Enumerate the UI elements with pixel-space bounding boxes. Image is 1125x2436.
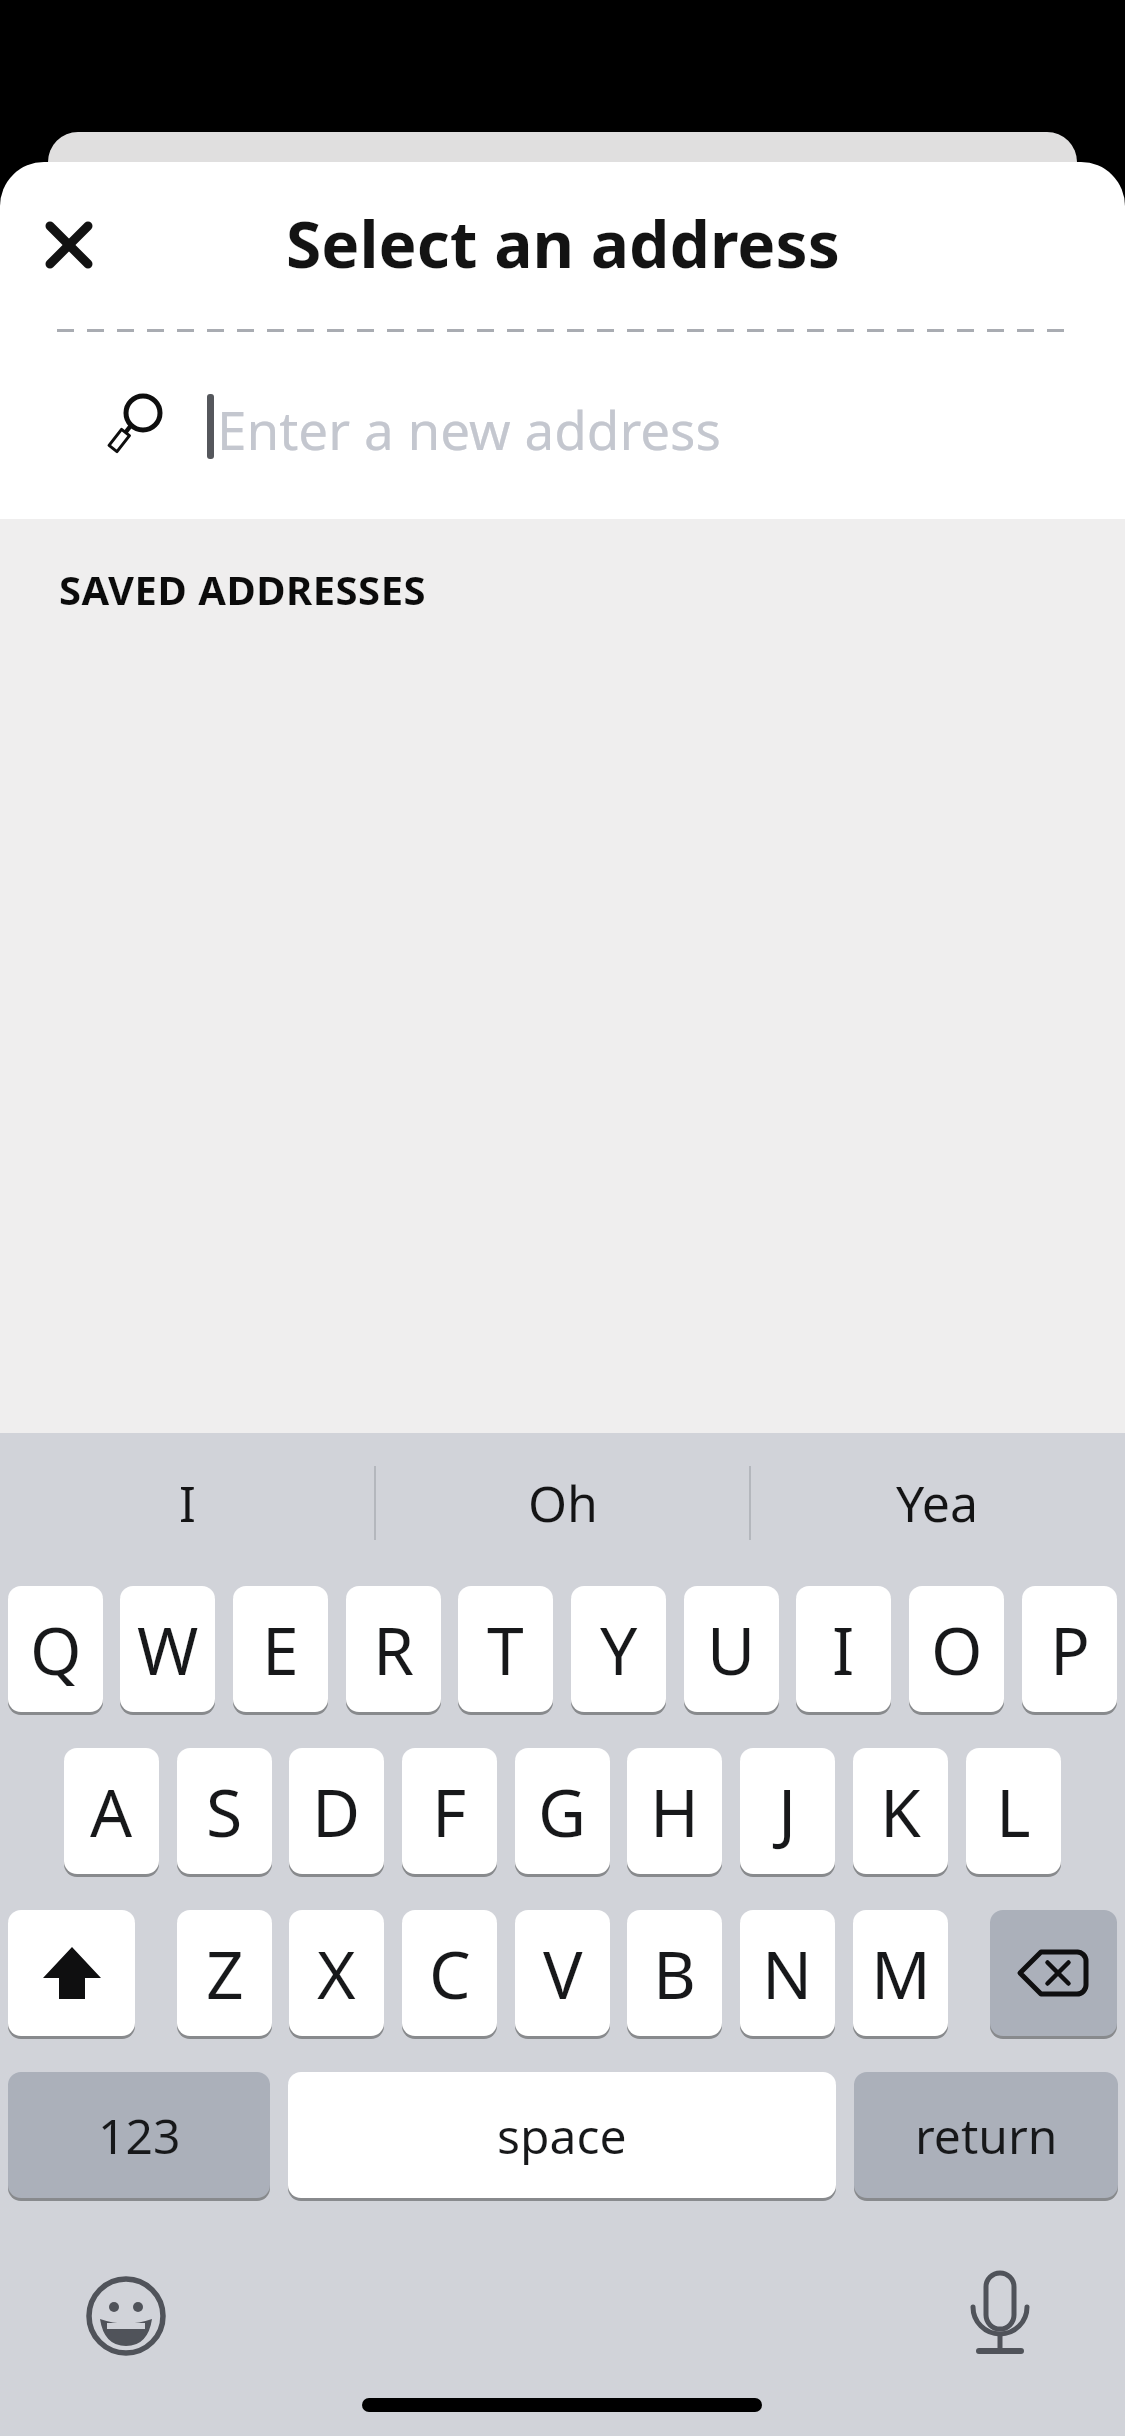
button[interactable] [990, 1910, 1117, 2036]
button[interactable]: O [909, 1586, 1004, 1712]
staticText: 123 [98, 2103, 181, 2168]
button[interactable]: S [177, 1748, 272, 1874]
staticText: Enter a new address [217, 393, 721, 465]
button[interactable]: space [288, 2072, 836, 2198]
button[interactable]: V [515, 1910, 610, 2036]
staticText: E [262, 1604, 299, 1694]
button[interactable]: M [853, 1910, 948, 2036]
staticText: X [317, 1928, 356, 2018]
button[interactable]: I [796, 1586, 891, 1712]
button[interactable]: X [289, 1910, 384, 2036]
button[interactable]: Y [571, 1586, 666, 1712]
staticText: W [137, 1604, 199, 1694]
button[interactable] [950, 2262, 1050, 2372]
button[interactable]: U [684, 1586, 779, 1712]
staticText: D [312, 1766, 361, 1856]
staticText: SAVED ADDRESSES [59, 562, 427, 616]
staticText: space [497, 2103, 627, 2168]
button[interactable]: Q [8, 1586, 103, 1712]
button[interactable]: N [740, 1910, 835, 2036]
button[interactable]: T [458, 1586, 553, 1712]
staticText: L [996, 1766, 1031, 1856]
button[interactable]: K [853, 1748, 948, 1874]
button[interactable]: H [627, 1748, 722, 1874]
staticText: Z [206, 1928, 244, 2018]
button[interactable] [76, 2266, 176, 2366]
button[interactable]: G [515, 1748, 610, 1874]
staticText: K [880, 1766, 921, 1856]
staticText: O [931, 1604, 983, 1694]
staticText: U [707, 1604, 756, 1694]
staticText: I [179, 1469, 196, 1537]
button[interactable]: F [402, 1748, 497, 1874]
button[interactable]: Yea [750, 1463, 1125, 1543]
staticText: G [538, 1766, 587, 1856]
staticText: Q [30, 1604, 82, 1694]
staticText: M [871, 1928, 931, 2018]
staticText: Yea [896, 1469, 979, 1537]
staticText: Y [600, 1604, 638, 1694]
button[interactable]: W [120, 1586, 215, 1712]
staticText: C [429, 1928, 471, 2018]
button[interactable]: C [402, 1910, 497, 2036]
staticText: I [832, 1604, 855, 1694]
button[interactable]: Oh [375, 1463, 750, 1543]
button[interactable]: 123 [8, 2072, 270, 2198]
button[interactable]: return [854, 2072, 1118, 2198]
staticText: R [373, 1604, 415, 1694]
staticText: N [762, 1928, 813, 2018]
staticText: H [650, 1766, 699, 1856]
button[interactable]: A [64, 1748, 159, 1874]
button[interactable]: I [0, 1463, 375, 1543]
button[interactable]: J [740, 1748, 835, 1874]
button[interactable]: L [966, 1748, 1061, 1874]
staticText: S [206, 1766, 243, 1856]
staticText: P [1050, 1604, 1090, 1694]
button[interactable]: R [346, 1586, 441, 1712]
button[interactable]: B [627, 1910, 722, 2036]
staticText: A [90, 1766, 133, 1856]
button[interactable] [28, 204, 110, 286]
staticText: Select an address [286, 200, 840, 287]
staticText: B [653, 1928, 696, 2018]
button[interactable]: P [1022, 1586, 1117, 1712]
button[interactable]: E [233, 1586, 328, 1712]
staticText: return [915, 2103, 1058, 2168]
button[interactable] [8, 1910, 135, 2036]
staticText: F [432, 1766, 467, 1856]
staticText: T [487, 1604, 524, 1694]
button[interactable] [0, 360, 1125, 500]
staticText: V [543, 1928, 583, 2018]
button[interactable]: Z [177, 1910, 272, 2036]
staticText: Oh [528, 1469, 598, 1537]
staticText: J [778, 1766, 797, 1856]
button[interactable]: D [289, 1748, 384, 1874]
